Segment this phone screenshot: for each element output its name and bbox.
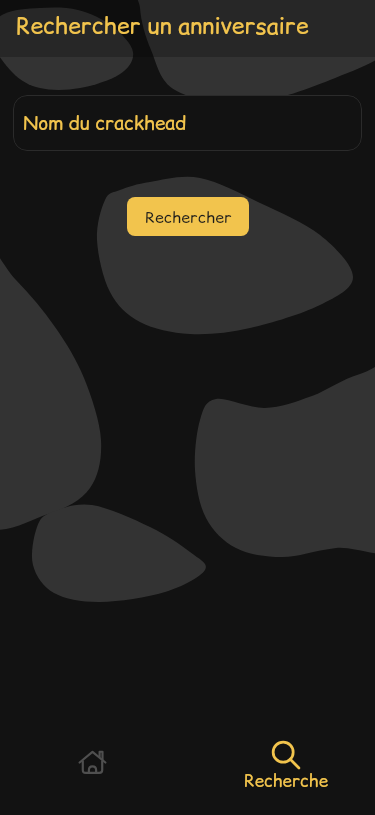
button[interactable]: Recherche	[230, 741, 342, 813]
button[interactable]: Nom du crackhead	[13, 95, 362, 151]
staticText: Rechercher un anniversaire	[16, 10, 309, 42]
staticText: Recherche	[244, 769, 328, 793]
staticText: Nom du crackhead	[23, 110, 187, 137]
button[interactable]: Rechercher	[127, 197, 249, 236]
staticText: Rechercher	[145, 206, 232, 228]
button[interactable]: Accueil	[36, 734, 148, 790]
